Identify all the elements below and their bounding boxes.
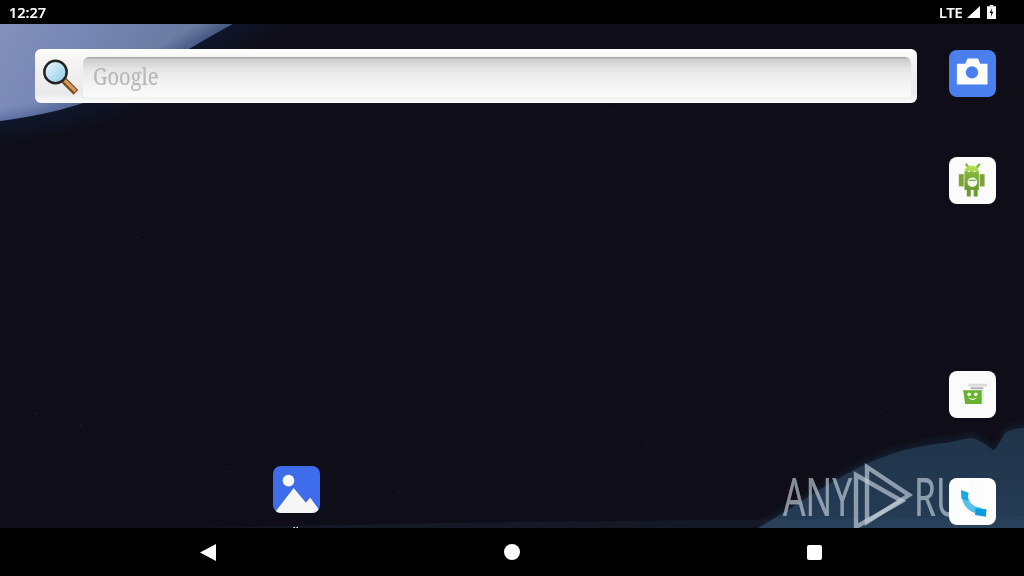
staticText: Google	[93, 59, 159, 92]
staticText: Gallery	[277, 524, 317, 540]
button[interactable]: Gallery	[273, 466, 320, 513]
staticText: RU	[914, 459, 962, 531]
button[interactable]: Back	[176, 528, 240, 576]
button[interactable]: Home	[480, 528, 544, 576]
staticText: LTE	[939, 2, 963, 22]
button[interactable]: Phone	[949, 478, 996, 525]
button[interactable]: Camera	[949, 50, 996, 97]
staticText: ANY	[783, 459, 853, 531]
other: Search	[40, 54, 84, 98]
button[interactable]: Android app	[949, 157, 996, 204]
button[interactable]: Search	[35, 49, 917, 103]
button[interactable]: Recents	[782, 528, 846, 576]
staticText: 12:27	[9, 2, 47, 22]
button[interactable]: API Demos	[949, 371, 996, 418]
